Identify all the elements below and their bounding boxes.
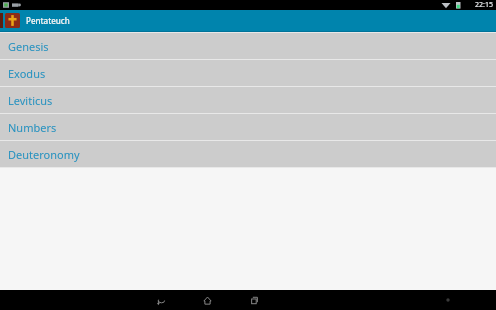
staticText: Numbers [8,120,57,135]
staticText: Deuteronomy [8,147,80,162]
button[interactable]: Deuteronomy [0,141,496,167]
button[interactable]: Numbers [0,114,496,140]
button[interactable]: Leviticus [0,87,496,113]
staticText: Exodus [8,66,46,81]
staticText: Pentateuch [26,15,70,26]
button[interactable]: Home [197,290,217,310]
staticText: Genesis [8,39,49,54]
button[interactable]: More options [442,294,454,306]
button[interactable]: Genesis [0,33,496,59]
button[interactable]: Back [151,290,171,310]
staticText: Leviticus [8,93,53,108]
button[interactable]: Recent apps [243,290,263,310]
button[interactable]: Exodus [0,60,496,86]
staticText: 22:15 [475,0,493,10]
button[interactable]: App icon [5,13,20,28]
